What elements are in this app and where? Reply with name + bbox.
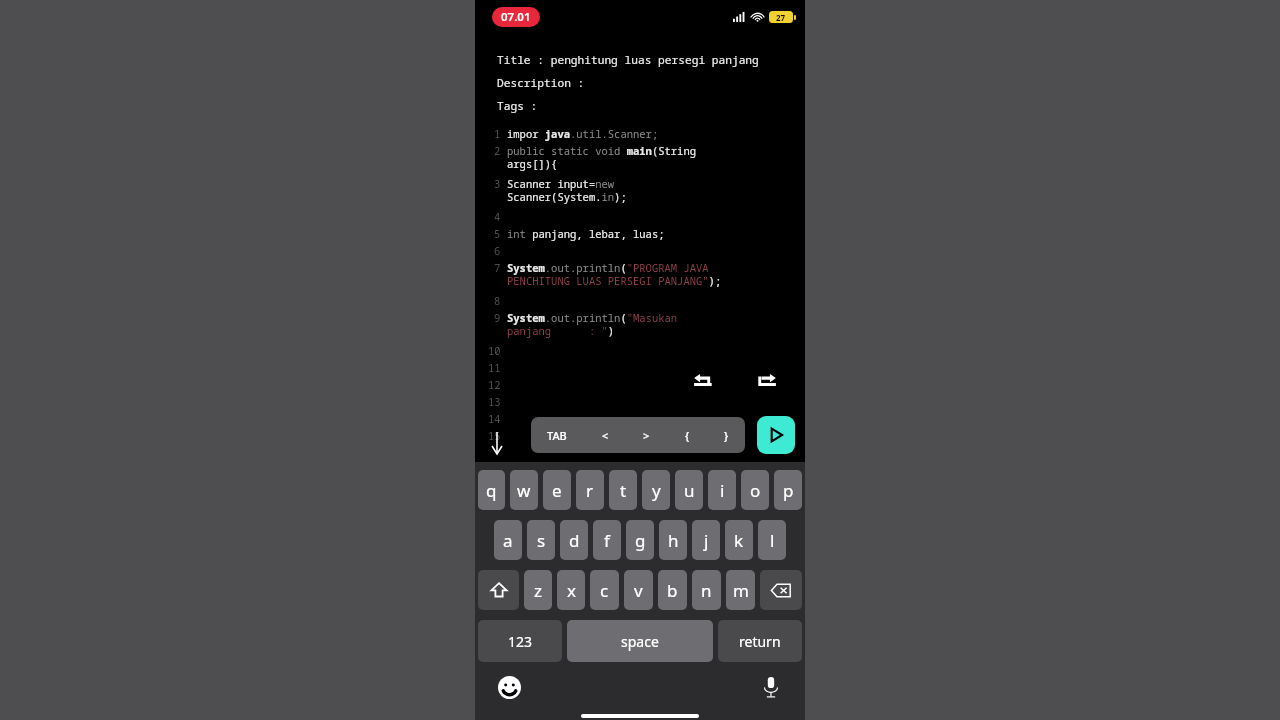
staticText: h [668,529,679,552]
staticText: space [621,632,659,651]
staticText: impor java.util.Scanner; [507,127,659,141]
button[interactable]: r [576,470,604,510]
staticText: u [684,479,695,502]
button[interactable]: g [626,520,654,560]
button[interactable]: d [560,520,588,560]
staticText: 4 [494,210,501,224]
staticText: l [770,529,775,552]
staticText: } [724,428,729,443]
staticText: j [704,529,709,552]
staticText: { [685,428,690,443]
staticText: 14 [488,412,501,426]
staticText: r [586,479,594,502]
staticText: > [643,428,650,443]
staticText: Tags : [497,98,538,113]
button[interactable]: TAB [531,417,745,453]
button[interactable]: v [624,570,653,610]
staticText: return [739,632,781,651]
button[interactable]: z [524,570,552,610]
button[interactable]: o [741,470,769,510]
staticText: 9 [494,311,501,325]
staticText: int panjang, lebar, luas; [507,227,665,241]
button[interactable]: t [609,470,637,510]
button[interactable]: } [720,428,733,443]
button[interactable]: w [510,470,538,510]
button[interactable]: Undo [687,368,721,394]
staticText: 12 [488,378,501,392]
button[interactable]: Emoji [492,670,526,704]
staticText: b [667,579,678,602]
staticText: System.out.println("Masukan panjang : ") [507,311,678,338]
staticText: < [602,428,609,443]
staticText: 10 [488,344,501,358]
button[interactable]: c [590,570,619,610]
button[interactable]: j [692,520,720,560]
button[interactable]: Hide keyboard [489,430,505,456]
staticText: y [652,479,661,502]
button[interactable]: p [774,470,802,510]
staticText: f [604,529,610,552]
button[interactable]: space [567,620,713,662]
staticText: t [620,479,627,502]
staticText: TAB [547,428,567,443]
staticText: p [783,479,794,502]
button[interactable]: 123 [478,620,562,662]
staticText: m [733,579,749,602]
button[interactable]: l [758,520,786,560]
button[interactable]: Run [757,416,795,454]
button[interactable]: Backspace [760,570,802,610]
staticText: o [750,479,761,502]
button[interactable]: m [726,570,755,610]
button[interactable]: return [718,620,802,662]
staticText: v [634,579,643,602]
button[interactable]: a [494,520,522,560]
staticText: c [600,579,609,602]
button[interactable]: Shift [478,570,519,610]
button[interactable]: TAB [543,428,571,443]
staticText: Description : [497,75,585,90]
staticText: n [701,579,712,602]
button[interactable]: i [708,470,736,510]
staticText: 7 [494,261,501,275]
staticText: i [720,479,725,502]
staticText: public static void main(String args[]){ [507,144,696,171]
staticText: a [503,529,513,552]
button[interactable]: Voice input [754,670,788,704]
staticText: 11 [488,361,501,375]
button[interactable]: x [557,570,585,610]
button[interactable]: e [543,470,571,510]
staticText: 2 [494,144,501,158]
staticText: 3 [494,177,501,191]
staticText: Title : penghitung luas persegi panjang [497,52,759,67]
button[interactable]: q [478,470,505,510]
staticText: 8 [494,294,501,308]
button[interactable]: b [658,570,687,610]
button[interactable]: < [598,428,613,443]
staticText: 15 [488,429,501,443]
button[interactable]: y [642,470,670,510]
staticText: 27 [776,12,786,23]
staticText: 5 [494,227,501,241]
staticText: e [552,479,562,502]
staticText: d [569,529,580,552]
button[interactable]: h [659,520,687,560]
staticText: z [534,579,542,602]
button[interactable]: k [725,520,753,560]
button[interactable]: s [527,520,555,560]
staticText: x [567,579,576,602]
staticText: q [486,479,497,502]
staticText: 07.01 [501,9,531,25]
button[interactable]: Redo [749,368,783,394]
button[interactable]: > [639,428,654,443]
staticText: k [734,529,744,552]
staticText: 123 [508,632,533,651]
staticText: 13 [488,395,501,409]
button[interactable]: u [675,470,703,510]
staticText: w [517,479,531,502]
button[interactable]: n [692,570,721,610]
staticText: 6 [494,244,501,258]
button[interactable]: f [593,520,621,560]
button[interactable]: { [681,428,694,443]
staticText: g [635,529,646,552]
staticText: System.out.println("PROGRAM JAVA PENCHIT… [507,261,722,288]
